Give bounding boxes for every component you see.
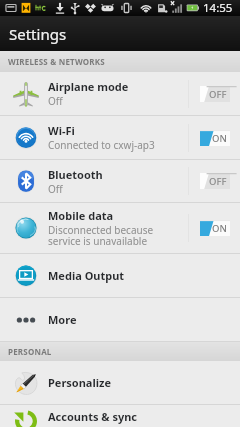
staticText: ON	[212, 222, 227, 235]
staticText: OFF	[209, 88, 227, 101]
button[interactable]: Switch off	[200, 173, 230, 189]
staticText: Personalize	[48, 375, 112, 390]
button[interactable]: Switch off	[200, 86, 230, 102]
staticText: Off	[48, 182, 63, 196]
staticText: ON	[212, 132, 227, 145]
button[interactable]: More	[0, 298, 240, 341]
button[interactable]: Personalize	[0, 361, 240, 404]
button[interactable]: Mobile data	[0, 203, 240, 253]
staticText: Mobile data	[48, 208, 114, 223]
button[interactable]: Accounts & sync	[0, 405, 240, 427]
staticText: Wi-Fi	[48, 123, 75, 138]
staticText: Airplane mode	[48, 79, 129, 94]
staticText: PERSONAL	[8, 346, 52, 357]
button[interactable]: Bluetooth	[0, 160, 240, 202]
staticText: OFF	[209, 175, 227, 188]
staticText: Off	[48, 94, 63, 108]
staticText: Media Output	[48, 268, 125, 283]
staticText: More	[48, 312, 77, 327]
staticText: 14:55	[203, 0, 233, 16]
button[interactable]: Airplane mode	[0, 72, 240, 115]
button[interactable]: Switch on	[200, 130, 230, 146]
button[interactable]: Switch on	[200, 220, 230, 236]
staticText: WIRELESS & NETWORKS	[8, 56, 105, 67]
staticText: Settings	[9, 24, 67, 44]
button[interactable]: Wi-Fi	[0, 116, 240, 159]
staticText: Connected to cxwj-ap3	[48, 138, 155, 152]
staticText: Accounts & sync	[48, 409, 138, 424]
staticText: Bluetooth	[48, 167, 103, 182]
button[interactable]: Media Output	[0, 254, 240, 297]
staticText: Disconnected because service is unavaila…	[48, 223, 154, 248]
